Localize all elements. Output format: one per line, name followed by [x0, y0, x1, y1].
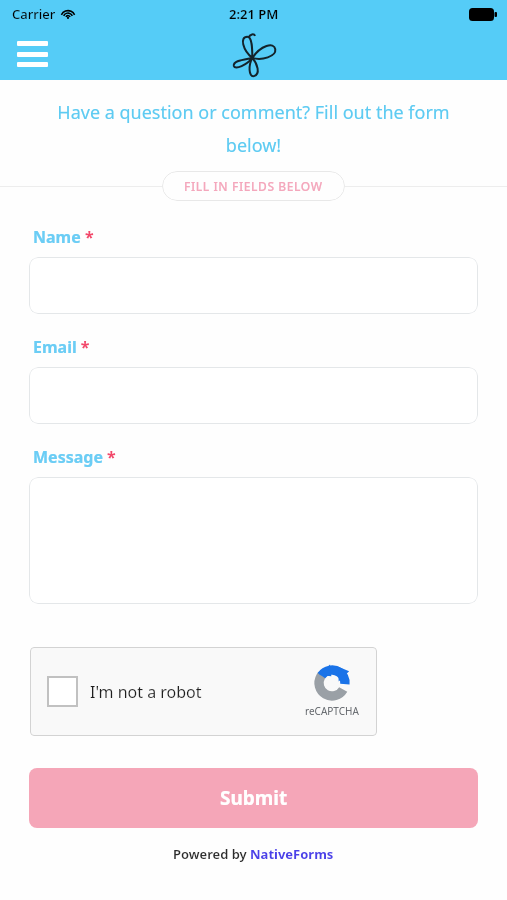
button[interactable]: I'm not a robot — [30, 647, 377, 736]
button[interactable]: Powered by NativeForms — [173, 845, 334, 863]
button[interactable] — [29, 477, 478, 604]
button[interactable] — [29, 367, 478, 424]
staticText: reCAPTCHA — [305, 704, 359, 718]
button[interactable]: Menu — [17, 41, 48, 67]
staticText: Have a question or comment? Fill out the… — [20, 100, 487, 157]
staticText: Submit — [220, 785, 288, 811]
other: Logo — [226, 31, 282, 79]
button[interactable] — [29, 257, 478, 314]
staticText: Carrier — [12, 5, 56, 23]
staticText: I'm not a robot — [90, 681, 202, 703]
staticText: 2:21 PM — [229, 5, 279, 23]
staticText: Name * — [33, 226, 94, 248]
button[interactable]: Submit — [29, 768, 478, 828]
staticText: Message * — [33, 446, 116, 468]
staticText: Email * — [33, 336, 90, 358]
staticText: FILL IN FIELDS BELOW — [184, 178, 323, 194]
button[interactable]: FILL IN FIELDS BELOW — [184, 178, 323, 194]
